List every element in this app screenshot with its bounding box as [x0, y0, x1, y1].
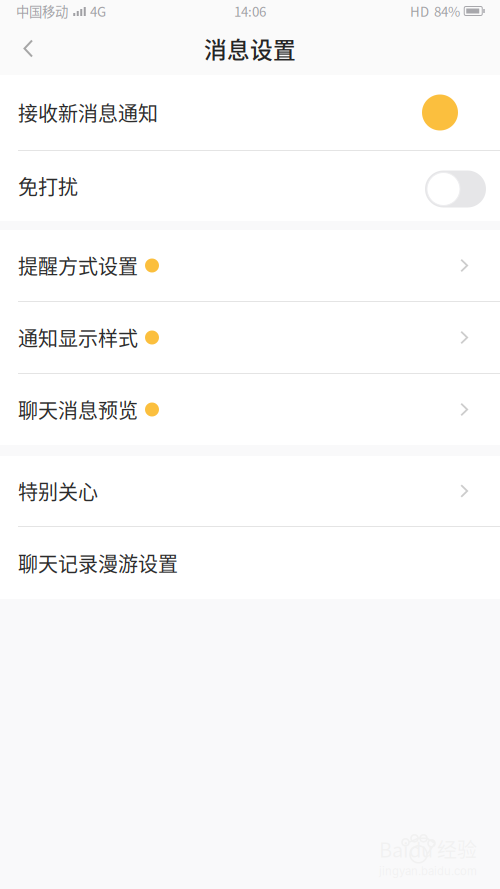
- staticText: 特别关心: [18, 476, 98, 505]
- staticText: 消息设置: [204, 32, 296, 65]
- staticText: 提醒方式设置: [18, 251, 138, 280]
- staticText: 84%: [434, 1, 460, 21]
- button[interactable]: 聊天消息预览: [0, 374, 500, 445]
- button[interactable]: 提醒方式设置: [0, 230, 500, 301]
- staticText: 免打扰: [18, 171, 78, 200]
- staticText: Baidu 经验: [379, 834, 477, 863]
- button[interactable]: 通知显示样式: [0, 302, 500, 373]
- button[interactable]: 特别关心: [0, 456, 500, 526]
- staticText: 4G: [90, 1, 106, 21]
- staticText: HD: [410, 1, 429, 21]
- staticText: 14:06: [234, 1, 266, 21]
- staticText: 接收新消息通知: [18, 98, 158, 127]
- staticText: 聊天消息预览: [18, 395, 138, 424]
- button[interactable]: 接收新消息通知: [0, 75, 500, 150]
- staticText: 通知显示样式: [18, 323, 138, 352]
- button[interactable]: 聊天记录漫游设置: [0, 527, 500, 599]
- staticText: 聊天记录漫游设置: [18, 548, 178, 577]
- button[interactable]: 免打扰: [0, 151, 500, 221]
- button[interactable]: Back: [0, 22, 53, 74]
- staticText: 中国移动: [16, 1, 68, 21]
